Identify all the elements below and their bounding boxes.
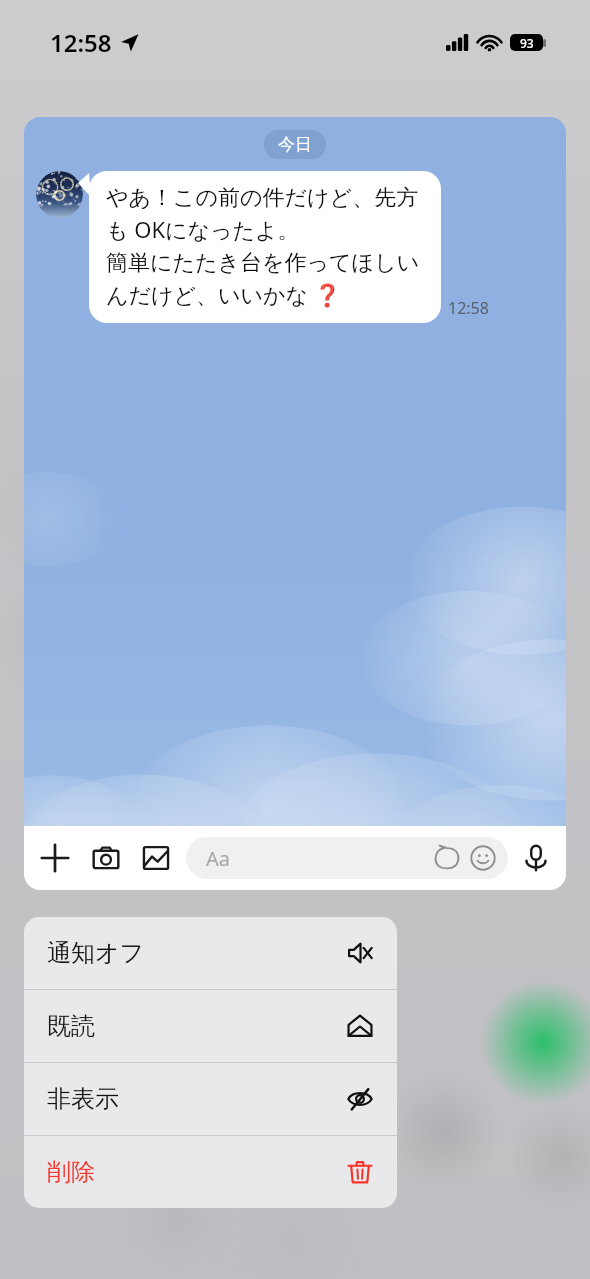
staticText: 削除 [47,1157,95,1187]
button[interactable]: Emoji [470,845,496,871]
staticText: 通知オフ [47,938,145,968]
staticText: 今日 [278,134,312,155]
button[interactable]: Aa [186,837,508,879]
staticText: 既読 [47,1011,95,1041]
button[interactable]: 通知オフ [24,917,397,989]
button[interactable]: Voice message [522,844,550,872]
button[interactable]: やあ！この前の件だけど、先方も OKになったよ。 簡単にたたき台を作ってほしいん… [89,171,441,323]
staticText: Aa [206,845,230,872]
button[interactable]: Photos [142,844,170,872]
button[interactable]: 削除 [24,1136,397,1208]
staticText: 12:58 [50,26,112,59]
staticText: やあ！この前の件だけど、先方も OKになったよ。 簡単にたたき台を作ってほしいん… [106,184,424,310]
staticText: 93 [520,35,534,51]
staticText: 12:58 [448,297,489,319]
button[interactable]: Add [40,843,70,873]
staticText: 非表示 [47,1084,119,1114]
button[interactable]: 既読 [24,990,397,1062]
button[interactable]: AI assistant [434,845,460,871]
button[interactable]: Camera [92,844,120,872]
button[interactable]: 今日 [264,130,326,159]
button[interactable]: 非表示 [24,1063,397,1135]
